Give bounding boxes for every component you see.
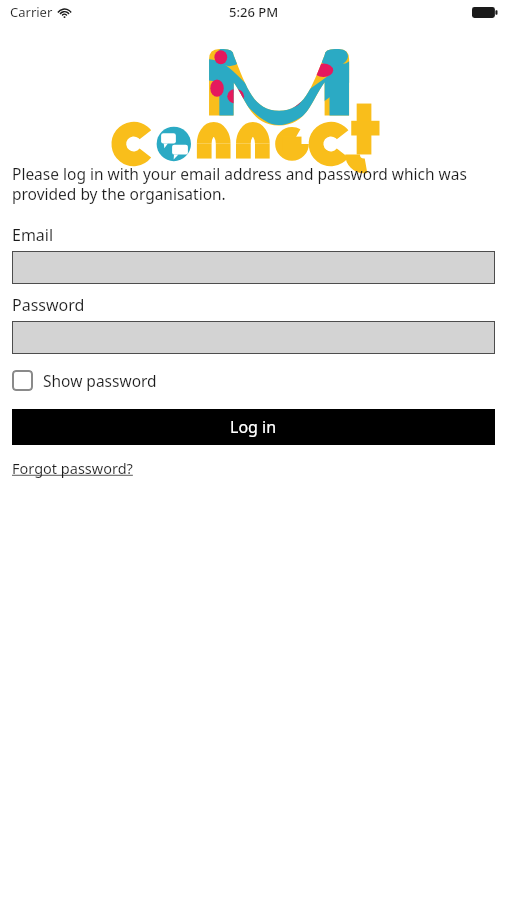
staticText: Carrier: [10, 3, 53, 21]
staticText: Log in: [230, 416, 277, 438]
staticText: Password: [12, 294, 85, 316]
staticText: Show password: [43, 370, 157, 391]
button[interactable]: [12, 251, 495, 284]
button[interactable]: [12, 321, 495, 354]
staticText: 5:26 PM: [229, 3, 279, 21]
staticText: Please log in with your email address an…: [12, 163, 493, 205]
button[interactable]: Show password: [12, 370, 157, 391]
button[interactable]: Forgot password?: [12, 458, 133, 478]
button[interactable]: Log in: [12, 409, 495, 445]
staticText: Email: [12, 224, 54, 246]
